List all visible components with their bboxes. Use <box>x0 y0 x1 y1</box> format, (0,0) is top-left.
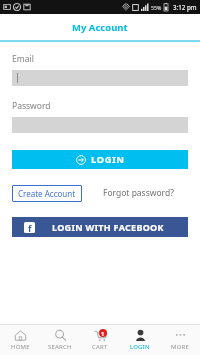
staticText: HOME <box>11 343 30 351</box>
button[interactable]: MORE <box>160 325 200 355</box>
button[interactable]: SEARCH <box>40 325 80 355</box>
staticText: 55% <box>151 4 162 11</box>
staticText: f <box>28 222 32 233</box>
button[interactable]: HOME <box>0 325 40 355</box>
button[interactable]: CART <box>80 325 120 355</box>
button[interactable]: Create Account <box>12 185 82 202</box>
staticText: My Account <box>72 21 128 34</box>
staticText: Create Account <box>18 188 76 199</box>
button[interactable] <box>12 70 188 86</box>
button[interactable]: f <box>12 217 188 237</box>
staticText: 3:12 pm <box>173 3 197 11</box>
staticText: SEARCH <box>48 343 72 351</box>
staticText: LOGIN <box>130 343 150 351</box>
staticText: MORE <box>171 343 189 351</box>
staticText: 1 <box>101 330 105 337</box>
staticText: LOGIN WITH FACEBOOK <box>52 221 164 233</box>
staticText: Email <box>12 53 34 65</box>
staticText: LOGIN <box>91 153 125 166</box>
staticText: Password <box>12 100 51 112</box>
button[interactable]: LOGIN <box>12 150 188 169</box>
button[interactable]: Forgot password? <box>97 183 180 203</box>
staticText: Forgot password? <box>103 187 174 199</box>
staticText: CART <box>92 343 108 351</box>
button[interactable]: LOGIN <box>120 325 160 355</box>
